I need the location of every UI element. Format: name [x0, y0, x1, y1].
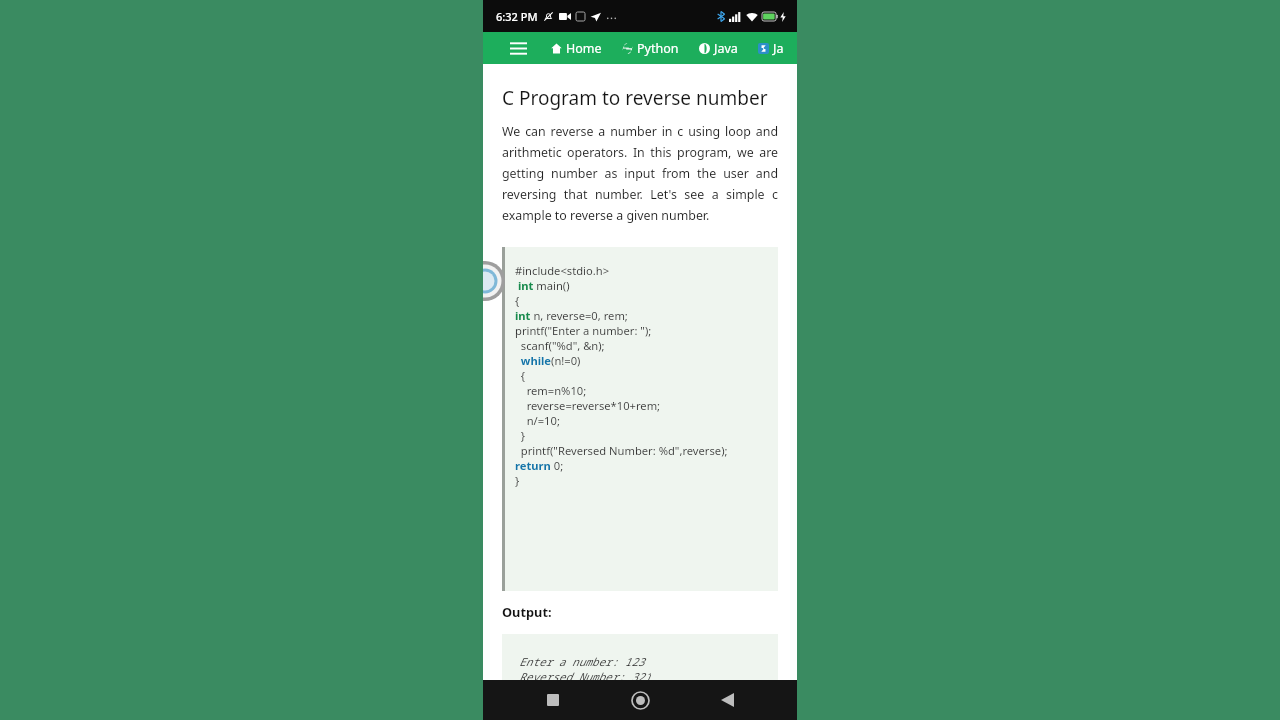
staticText: { [515, 368, 526, 383]
staticText: 6:32 PM [496, 9, 538, 24]
button[interactable]: Home [623, 683, 657, 717]
staticText: } [515, 428, 526, 443]
staticText: #include<stdio.h> [515, 263, 610, 278]
staticText: scanf("%d", &n); [515, 338, 605, 353]
staticText: Ja [773, 40, 784, 57]
staticText: n/=10; [515, 413, 560, 428]
button[interactable]: Home [551, 36, 602, 61]
staticText: reverse=reverse*10+rem; [515, 398, 661, 413]
button[interactable]: Python [622, 36, 679, 61]
button[interactable]: Java [699, 36, 738, 61]
staticText: Reversed Number: 321 [519, 669, 651, 680]
button[interactable]: Back [710, 683, 744, 717]
button[interactable]: Recent apps [536, 683, 570, 717]
staticText: int n, reverse=0, rem; [515, 308, 628, 323]
staticText: printf("Reversed Number: %d",reverse); [515, 443, 728, 458]
staticText: int main() [515, 278, 570, 293]
staticText: printf("Enter a number: "); [515, 323, 652, 338]
staticText: { [515, 293, 520, 308]
staticText: rem=n%10; [515, 383, 587, 398]
button[interactable]: Floating control [483, 261, 505, 301]
staticText: Enter a number: 123 [519, 654, 645, 669]
staticText: Home [566, 40, 602, 57]
staticText: Output: [502, 603, 552, 620]
staticText: return 0; [515, 458, 564, 473]
staticText: while(n!=0) [515, 353, 581, 368]
button[interactable]: Open menu [505, 35, 531, 61]
staticText: Python [637, 40, 679, 57]
staticText: } [515, 473, 520, 488]
button[interactable]: Ja [758, 36, 784, 61]
staticText: C Program to reverse number [502, 85, 778, 111]
staticText: Java [714, 40, 738, 57]
staticText: We can reverse a number in c using loop … [502, 123, 778, 224]
